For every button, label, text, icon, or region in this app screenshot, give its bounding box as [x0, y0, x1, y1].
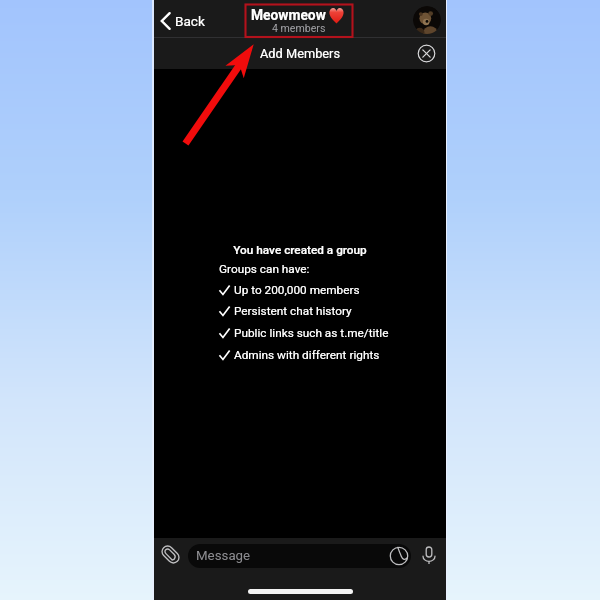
button[interactable]: Close [417, 44, 436, 63]
staticText: Meowmeow [251, 7, 326, 23]
button[interactable]: Group avatar [413, 6, 441, 34]
staticText: 4 members [272, 22, 326, 34]
button[interactable]: Message [188, 544, 411, 568]
staticText: You have created a group [154, 243, 446, 257]
staticText: Persistent chat history [234, 304, 352, 318]
staticText: Up to 200,000 members [234, 283, 360, 297]
staticText: Groups can have: [219, 262, 310, 276]
staticText: Back [175, 13, 205, 29]
staticText: Public links such as t.me/title [234, 326, 389, 340]
button[interactable]: Back [159, 2, 215, 40]
button[interactable]: Attach [160, 544, 181, 565]
button[interactable]: Add Members [154, 38, 446, 69]
button[interactable]: Voice message [419, 545, 439, 565]
staticText: Message [196, 548, 251, 564]
staticText: Admins with different rights [234, 348, 380, 362]
button[interactable]: Stickers [389, 546, 409, 566]
staticText: Add Members [260, 46, 341, 61]
